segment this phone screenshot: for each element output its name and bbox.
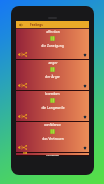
button[interactable]: Listen (18, 52, 22, 57)
button[interactable]: Listen (18, 83, 22, 88)
button[interactable]: Listen (18, 114, 22, 119)
button[interactable]: confidence (16, 122, 89, 153)
staticText: boredom (45, 91, 60, 95)
staticText: der Ärger (45, 74, 60, 78)
staticText: Feelings (30, 23, 43, 27)
staticText: affection (46, 29, 60, 33)
button[interactable]: Favorite (83, 115, 87, 119)
button[interactable]: Favorite (83, 146, 87, 150)
button[interactable]: Share (23, 145, 27, 150)
button[interactable]: affection (16, 29, 89, 60)
staticText: anger (48, 60, 58, 64)
button[interactable]: anger (16, 60, 89, 91)
button[interactable]: boredom (16, 91, 89, 122)
button[interactable]: Share (23, 83, 27, 88)
button[interactable]: Favorite (83, 53, 87, 57)
button[interactable]: courage (16, 153, 89, 156)
button[interactable]: Share (23, 52, 27, 57)
button[interactable]: Listen (18, 145, 22, 150)
staticText: das Vertrauen (42, 136, 64, 140)
button[interactable]: Favorite (83, 84, 87, 88)
button[interactable]: Back (19, 23, 23, 27)
button[interactable]: Share (23, 114, 27, 119)
staticText: die Zuneigung (41, 43, 64, 47)
staticText: confidence (44, 122, 61, 126)
staticText: courage (46, 153, 59, 156)
button[interactable]: Back (16, 21, 89, 28)
staticText: die Langeweile (41, 105, 65, 109)
